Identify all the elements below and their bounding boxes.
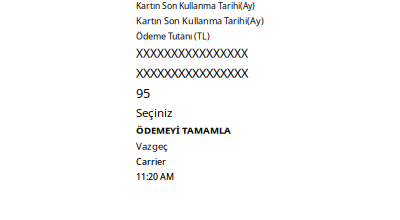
staticText: Kartın Son Kullanma Tarihi(Ay) (136, 15, 264, 27)
staticText: ÖDEMEYİ TAMAMLA (136, 123, 231, 136)
staticText: Seçiniz (136, 105, 172, 120)
staticText: Vazgeç (136, 139, 168, 153)
staticText: XXXXXXXXXXXXXXXX (136, 64, 248, 82)
staticText: XXXXXXXXXXXXXXXX (136, 45, 248, 61)
staticText: 11:20 AM (136, 171, 174, 183)
staticText: Kartın Son Kullanma Tarihi(Ay) (136, 0, 255, 12)
staticText: 95 (136, 85, 150, 102)
staticText: Ödeme Tutanı (TL) (136, 30, 210, 42)
staticText: Carrier (136, 156, 166, 168)
